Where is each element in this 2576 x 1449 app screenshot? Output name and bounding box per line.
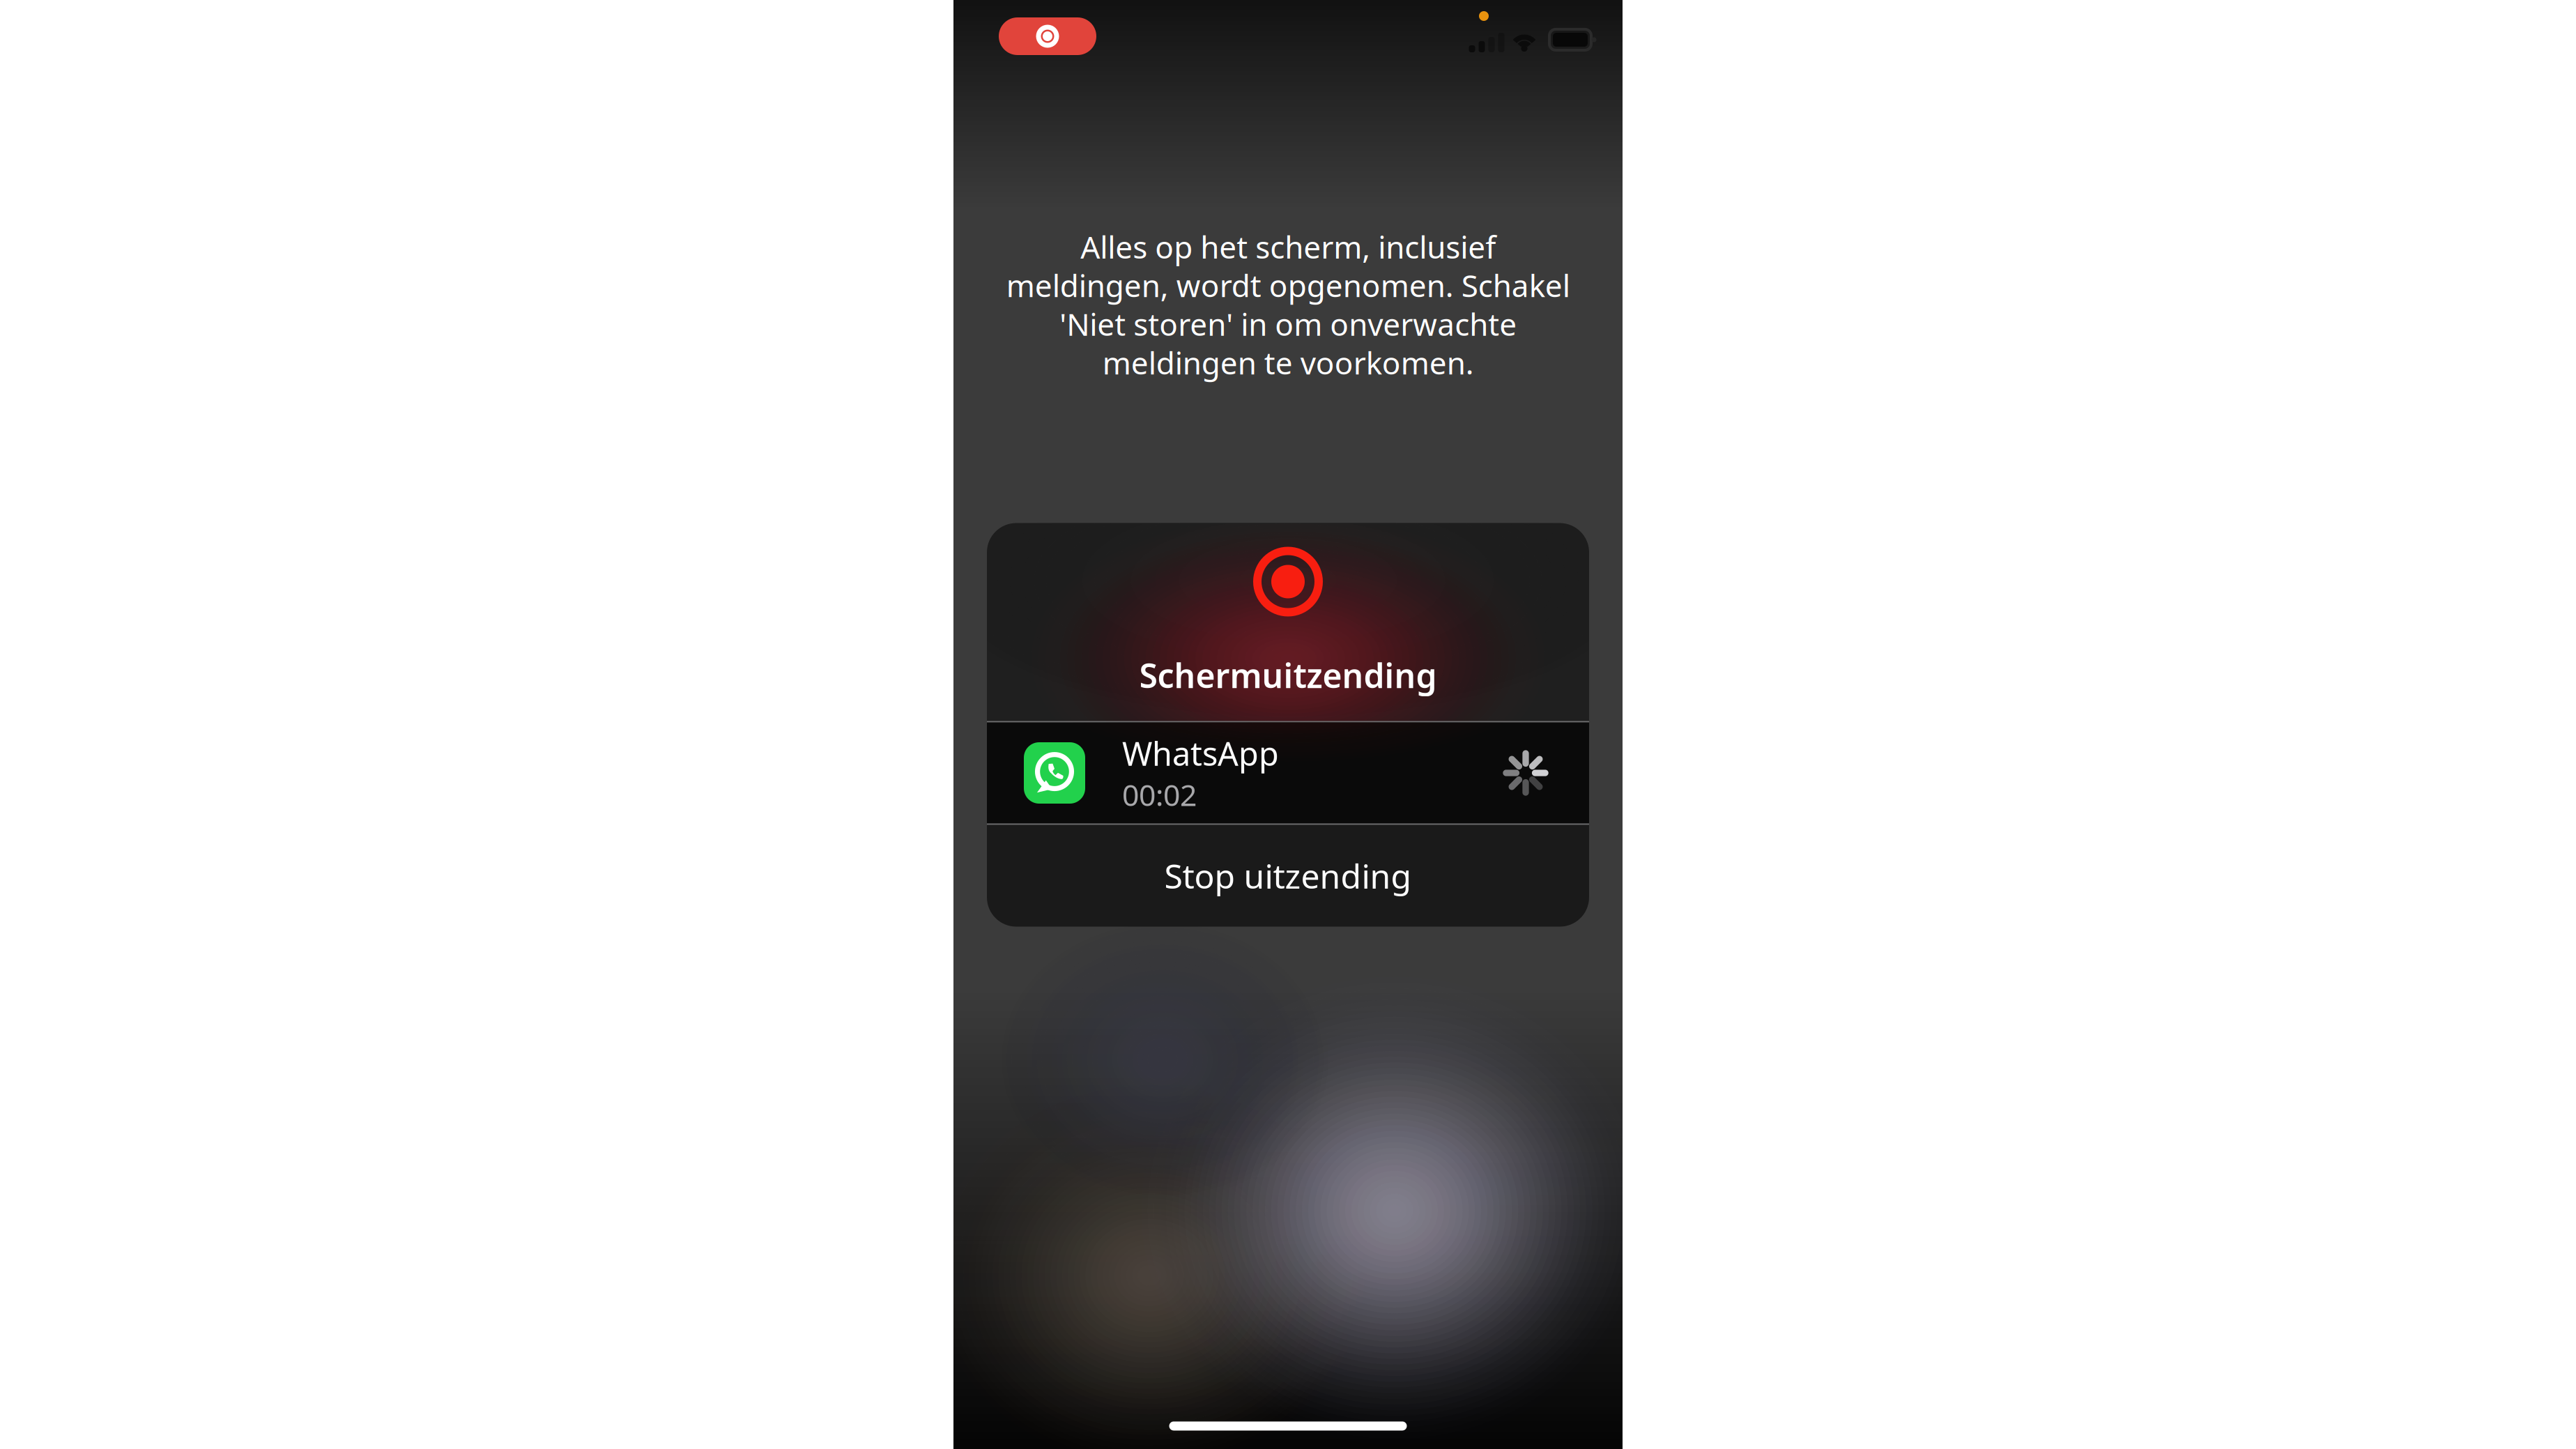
button[interactable]: WhatsApp <box>987 722 1589 823</box>
button[interactable]: Recording <box>999 17 1096 55</box>
staticText: Alles op het scherm, inclusief meldingen… <box>1006 226 1570 383</box>
button[interactable]: Stop uitzending <box>987 825 1589 927</box>
staticText: 00:02 <box>1122 775 1197 814</box>
staticText: WhatsApp <box>1122 732 1279 775</box>
staticText: Stop uitzending <box>1164 854 1412 898</box>
staticText: Schermuitzending <box>1139 653 1437 697</box>
